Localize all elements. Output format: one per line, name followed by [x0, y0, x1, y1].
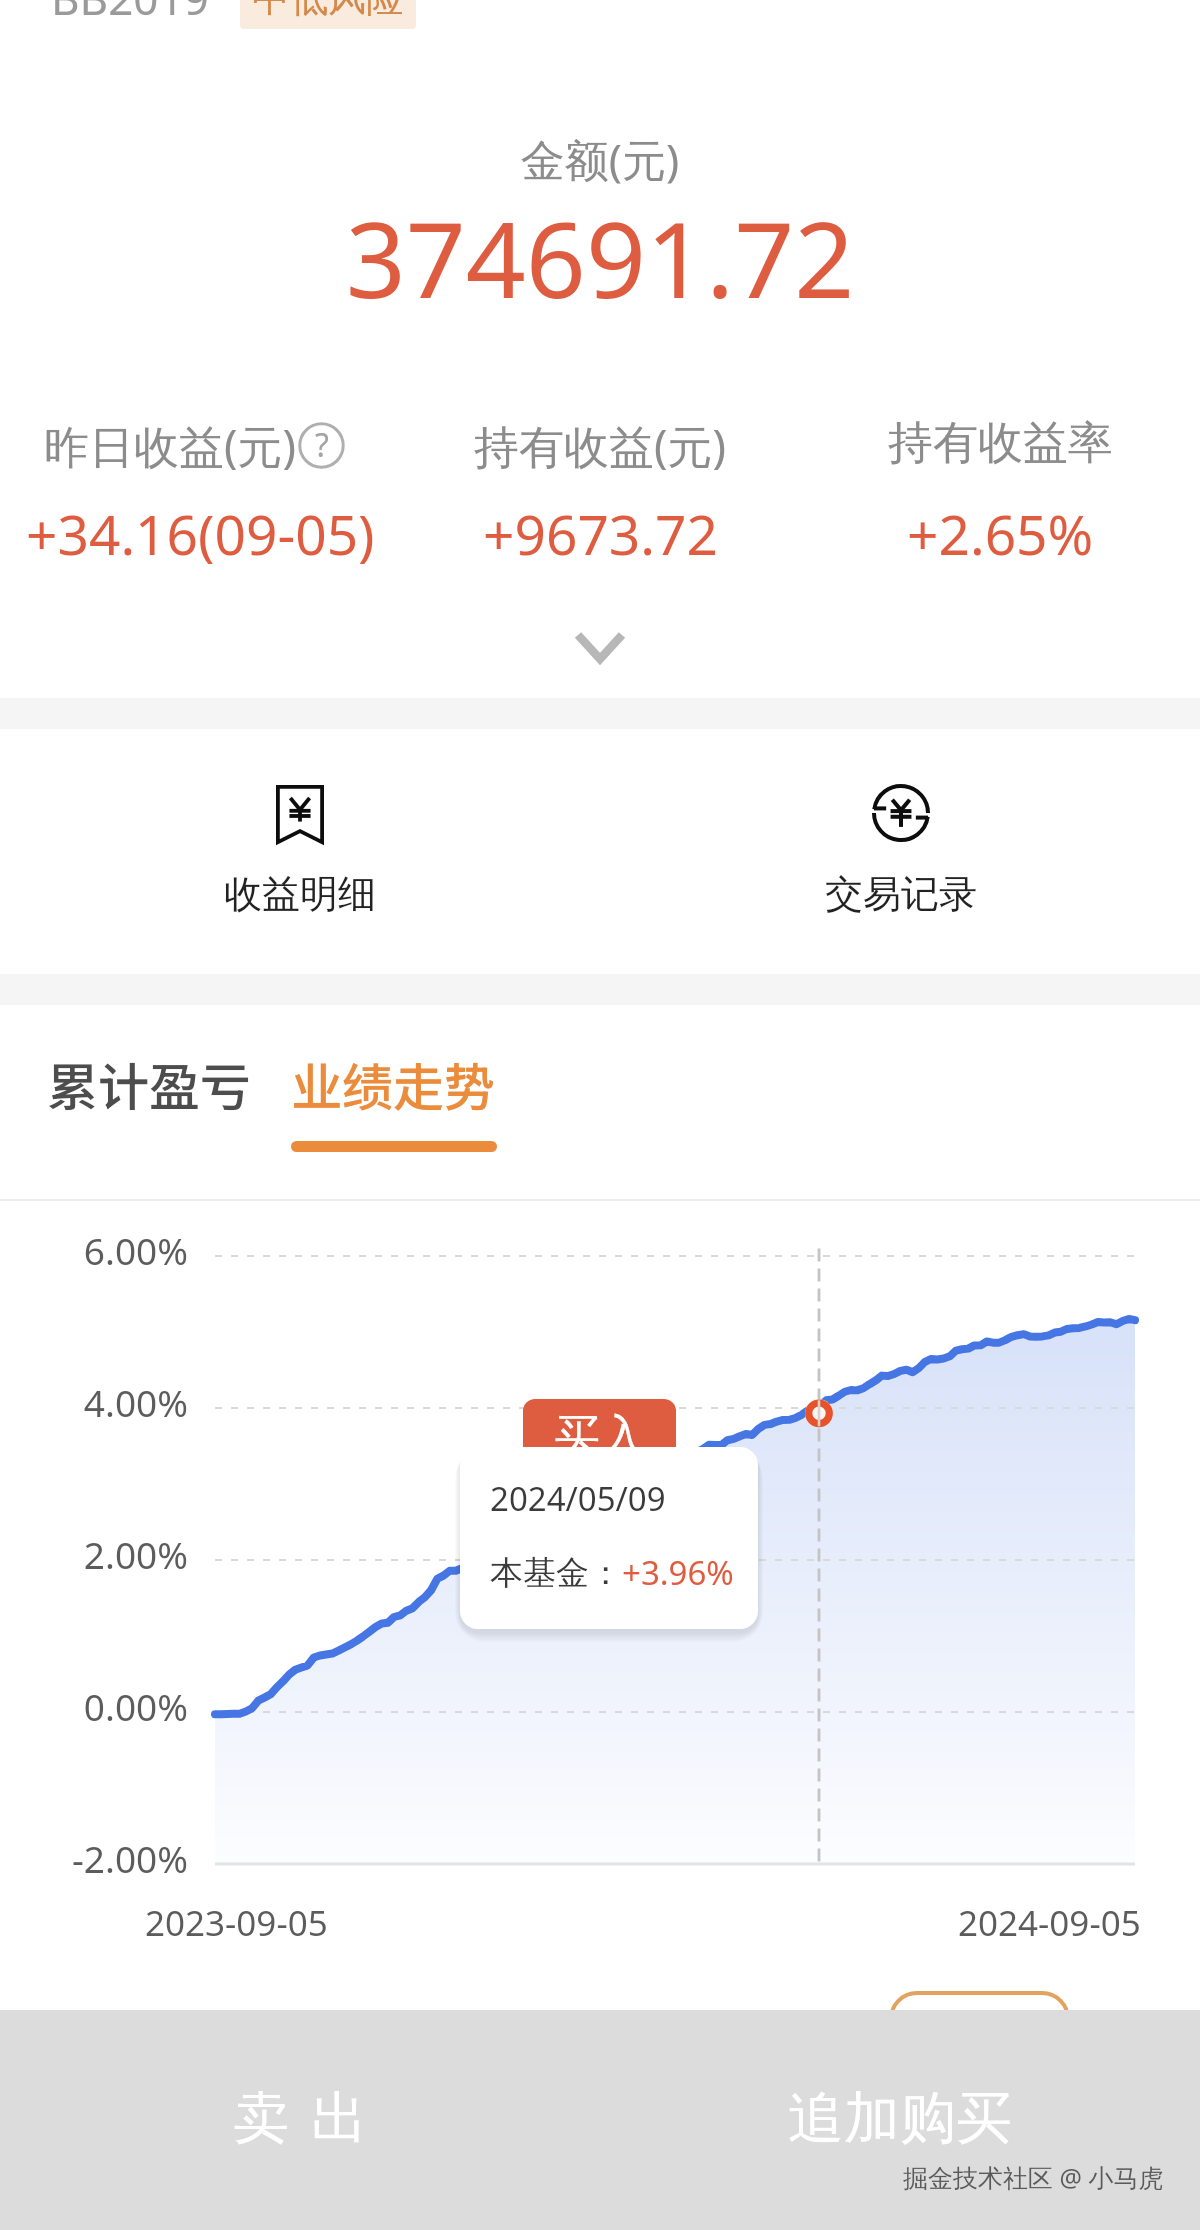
staticText: 掘金技术社区 @ 小马虎 [903, 2160, 1164, 2194]
button[interactable]: 收益明细 [150, 760, 450, 940]
button[interactable]: 业绩走势 [281, 1031, 506, 1156]
staticText: 收益明细 [224, 870, 376, 918]
staticText: 买入 [554, 1408, 646, 1466]
staticText: BB2019 [51, 0, 209, 28]
staticText: 2023-09-05 [145, 1899, 328, 1947]
staticText: 持有收益率 [888, 415, 1113, 472]
staticText: 4.00% [0, 1377, 188, 1427]
button[interactable]: 昨日收益(元) [44, 415, 345, 476]
button[interactable]: 追加购买 [600, 2010, 1200, 2230]
button[interactable]: 累计盈亏 [37, 1031, 252, 1156]
staticText: 中低风险 [252, 0, 404, 22]
staticText: ? [315, 423, 329, 467]
staticText: 出 [311, 2083, 367, 2154]
staticText: 交易记录 [825, 870, 977, 918]
staticText: 本基金： [490, 1552, 622, 1594]
other: 帮助 [298, 422, 345, 469]
staticText: +34.16(09-05) [26, 496, 375, 571]
staticText: 0.00% [0, 1681, 188, 1731]
staticText: 金额(元) [0, 129, 1200, 189]
staticText: +2.65% [907, 496, 1094, 571]
button[interactable]: 展开 [540, 605, 660, 689]
staticText: 昨日收益(元) [44, 415, 297, 476]
staticText: 2024-09-05 [958, 1899, 1141, 1947]
staticText: 持有收益(元) [474, 415, 727, 476]
staticText: +3.96% [622, 1550, 734, 1595]
button[interactable]: 买入 [523, 1399, 676, 1479]
staticText: -2.00% [0, 1833, 188, 1883]
staticText: 374691.72 [0, 186, 1200, 329]
staticText: +9673.72 [483, 496, 718, 571]
staticText: 2.00% [0, 1529, 188, 1579]
staticText: 业绩走势 [291, 1047, 496, 1121]
button[interactable]: 卖 [0, 2010, 600, 2230]
button[interactable]: 交易记录 [751, 760, 1051, 940]
staticText: 累计盈亏 [47, 1047, 252, 1121]
staticText: 追加购买 [788, 2083, 1012, 2154]
staticText: 2024/05/09 [490, 1476, 666, 1521]
staticText: 卖 [233, 2083, 289, 2154]
staticText: 6.00% [0, 1225, 188, 1275]
